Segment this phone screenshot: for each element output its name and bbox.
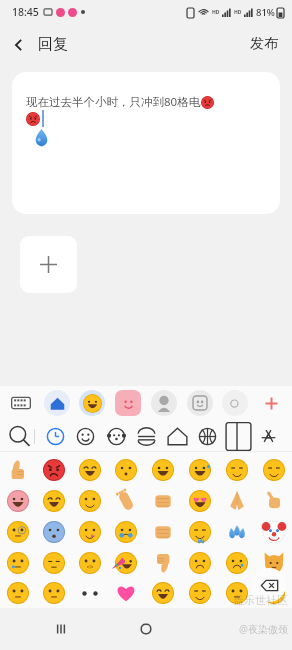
staticText: 发布 [250,35,278,53]
button[interactable]: Back [0,35,78,54]
button[interactable]: Emoji 13 [144,485,181,516]
button[interactable]: Emoji 25 [0,547,36,578]
button[interactable]: Emoji 11 [72,485,108,516]
button[interactable]: Emoji 23 [218,516,255,547]
button[interactable]: Stickers [115,390,141,416]
button[interactable]: Food [133,423,160,450]
staticText: HD [234,9,242,16]
button[interactable]: Add photo [20,236,77,293]
button[interactable]: More stickers [222,390,248,416]
button[interactable]: Emoji 15 [218,485,255,516]
button[interactable]: Emoji 26 [36,547,72,578]
button[interactable]: Backspace [252,568,286,602]
staticText: 现在过去半个小时，只冲到80格电 [26,94,201,110]
button[interactable]: Emoji 29 [144,547,181,578]
button[interactable]: Emoji 37 [144,578,181,608]
button[interactable]: Emoji 35 [72,578,108,608]
button[interactable]: Activities [194,423,221,450]
staticText: 81% [256,6,275,19]
button[interactable]: Travel [164,423,191,450]
button[interactable]: 发布 [236,27,292,61]
button[interactable]: Objects [225,423,252,450]
button[interactable]: Emoji 34 [36,578,72,608]
button[interactable]: Emoji 32 [255,547,292,578]
button[interactable]: Keyboard [8,390,34,416]
button[interactable]: Emoji 10 [36,485,72,516]
button[interactable]: Emoji 9 [0,485,36,516]
button[interactable]: 现在过去半个小时，只冲到80格电 [12,72,280,214]
button[interactable]: Emoji 24 [255,516,292,547]
other: Back [10,36,28,54]
button[interactable]: Smileys [72,423,99,450]
staticText: 回复 [38,35,68,54]
button[interactable]: Emoji 33 [0,578,36,608]
button[interactable]: Emoji 2 [36,454,72,485]
button[interactable]: Emoji 40 [255,578,292,608]
button[interactable]: Symbols [255,423,282,450]
button[interactable]: Emoji 8 [255,454,292,485]
button[interactable]: Recent [42,423,69,450]
button[interactable]: Emoji 31 [218,547,255,578]
button[interactable]: Emoji 16 [255,485,292,516]
button[interactable]: Emoji 14 [181,485,218,516]
button[interactable]: Emoji 19 [72,516,108,547]
button[interactable]: Emoji 18 [36,516,72,547]
button[interactable]: Emoji 6 [181,454,218,485]
button[interactable]: Emoji 1 [0,454,36,485]
staticText: 盖乐世社区 [233,593,288,607]
button[interactable]: Emoji [79,390,105,416]
staticText: HD [212,9,220,16]
button[interactable]: GIF [187,390,213,416]
button[interactable]: Avatar stickers [151,390,177,416]
button[interactable]: Home [122,608,170,650]
button[interactable]: Add sticker pack [258,390,284,416]
button[interactable]: Emoji 17 [0,516,36,547]
button[interactable]: Home stickers [44,390,70,416]
button[interactable]: Emoji 5 [144,454,181,485]
button[interactable]: Emoji 38 [181,578,218,608]
button[interactable]: Emoji 27 [72,547,108,578]
button[interactable]: Back [207,608,255,650]
button[interactable]: Emoji 39 [218,578,255,608]
button[interactable]: Recent apps [37,608,85,650]
button[interactable]: Emoji 28 [108,547,144,578]
button[interactable]: Emoji 21 [144,516,181,547]
staticText: 18:45 [12,5,39,19]
button[interactable]: Emoji 3 [72,454,108,485]
button[interactable]: Emoji 30 [181,547,218,578]
staticText: @夜染傲颈 [239,622,288,636]
button[interactable]: Search emoji [4,421,34,451]
button[interactable]: Emoji 7 [218,454,255,485]
button[interactable]: Emoji 20 [108,516,144,547]
button[interactable]: Emoji 36 [108,578,144,608]
button[interactable]: Emoji 4 [108,454,144,485]
button[interactable]: Emoji 12 [108,485,144,516]
button[interactable]: Animals [103,423,130,450]
button[interactable]: Emoji 22 [181,516,218,547]
